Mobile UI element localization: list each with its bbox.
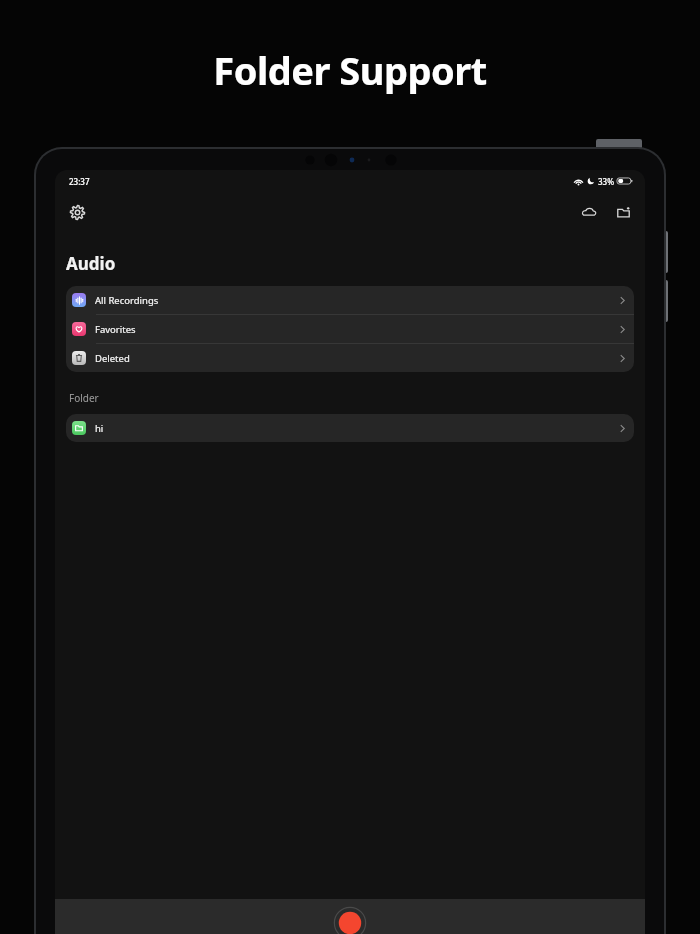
button[interactable]: All Recordings	[66, 286, 634, 314]
staticText: 23:37	[69, 176, 90, 187]
button[interactable]: Cloud sync	[575, 198, 603, 226]
button[interactable]: Deleted	[66, 344, 634, 372]
staticText: 33%	[598, 176, 614, 187]
staticText: hi	[95, 422, 104, 435]
button[interactable]: hi	[66, 414, 634, 442]
staticText: All Recordings	[95, 294, 159, 307]
staticText: Favorites	[95, 323, 136, 336]
button[interactable]: Record	[333, 906, 367, 934]
button[interactable]: New folder	[609, 198, 637, 226]
staticText: Deleted	[95, 352, 130, 365]
button[interactable]: Settings	[63, 198, 91, 226]
staticText: Audio	[66, 252, 116, 275]
staticText: Folder	[69, 391, 99, 405]
staticText: Folder Support	[0, 44, 700, 96]
button[interactable]: Favorites	[66, 315, 634, 343]
